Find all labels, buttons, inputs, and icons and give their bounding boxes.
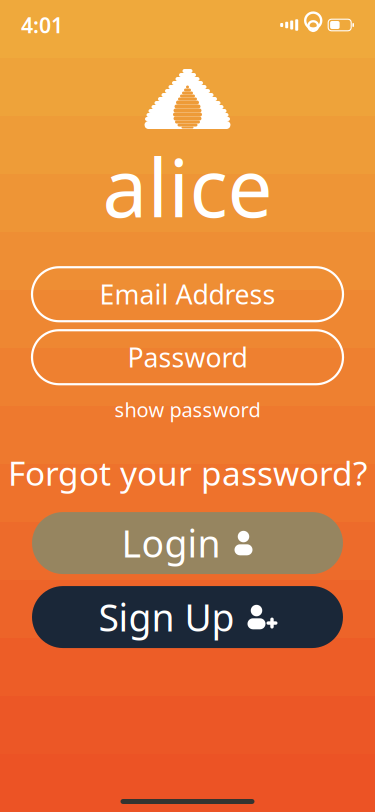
button[interactable]: Email Address bbox=[32, 267, 343, 321]
button[interactable]: Login bbox=[32, 512, 343, 574]
staticText: show password bbox=[114, 396, 260, 423]
staticText: Email Address bbox=[99, 276, 275, 312]
button[interactable]: Sign Up bbox=[32, 586, 343, 648]
button[interactable]: show password bbox=[102, 390, 272, 429]
staticText: alice bbox=[102, 133, 272, 239]
staticText: 4:01 bbox=[21, 11, 63, 39]
button[interactable]: Forgot your password? bbox=[0, 447, 375, 499]
staticText: Forgot your password? bbox=[8, 451, 367, 495]
button[interactable]: Password bbox=[32, 330, 343, 384]
staticText: Sign Up bbox=[98, 592, 234, 642]
staticText: Login bbox=[121, 518, 220, 568]
staticText: Password bbox=[127, 339, 247, 375]
